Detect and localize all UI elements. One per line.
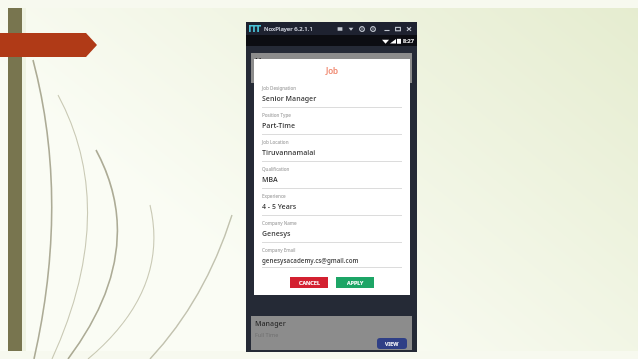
staticText: Tiruvannamalai xyxy=(262,148,316,158)
staticText: Company Name xyxy=(262,220,297,226)
button[interactable]: APPLY xyxy=(336,277,374,288)
staticText: Position Type xyxy=(262,112,291,118)
staticText: MBA xyxy=(262,175,278,185)
staticText: VIEW xyxy=(385,340,399,347)
button[interactable]: Company Name xyxy=(262,220,402,247)
button[interactable]: Position Type xyxy=(262,112,402,139)
button[interactable]: VIEW xyxy=(377,338,407,349)
staticText: Manager xyxy=(255,319,286,329)
staticText: genesysacademy.cs@gmail.com xyxy=(262,256,359,264)
button[interactable]: Job Designation xyxy=(262,85,402,112)
staticText: Senior Manager xyxy=(262,94,317,104)
staticText: Genesys xyxy=(262,229,291,239)
staticText: Full Time xyxy=(255,331,279,338)
button[interactable]: Manager xyxy=(251,53,412,83)
button[interactable]: Close xyxy=(403,23,414,34)
button[interactable]: Minimize xyxy=(381,23,392,34)
staticText: Qualification xyxy=(262,166,290,172)
button[interactable]: Experience xyxy=(262,193,402,220)
staticText: Experience xyxy=(262,193,286,199)
staticText: APPLY xyxy=(347,279,364,286)
staticText: Part-Time xyxy=(262,121,296,131)
button[interactable]: Company Email xyxy=(262,247,402,272)
button[interactable]: Job Location xyxy=(262,139,402,166)
button[interactable]: Qualification xyxy=(262,166,402,193)
staticText: Job Designation xyxy=(262,85,297,91)
button[interactable]: CANCEL xyxy=(290,277,328,288)
button[interactable]: Screenshot xyxy=(334,23,345,34)
button[interactable]: Volume xyxy=(345,23,356,34)
staticText: Company Email xyxy=(262,247,296,253)
button[interactable]: Maximize xyxy=(392,23,403,34)
staticText: NoxPlayer 6.2.1.1 xyxy=(264,25,313,33)
staticText: CANCEL xyxy=(299,279,320,286)
staticText: Job xyxy=(254,65,410,76)
button[interactable]: Manager xyxy=(251,316,412,350)
button[interactable]: Settings xyxy=(356,23,367,34)
staticText: 8:27 xyxy=(403,37,414,44)
staticText: 4 - 5 Years xyxy=(262,202,297,212)
button[interactable]: More settings xyxy=(367,23,378,34)
staticText: Manager xyxy=(255,56,286,66)
staticText: Job Location xyxy=(262,139,289,145)
